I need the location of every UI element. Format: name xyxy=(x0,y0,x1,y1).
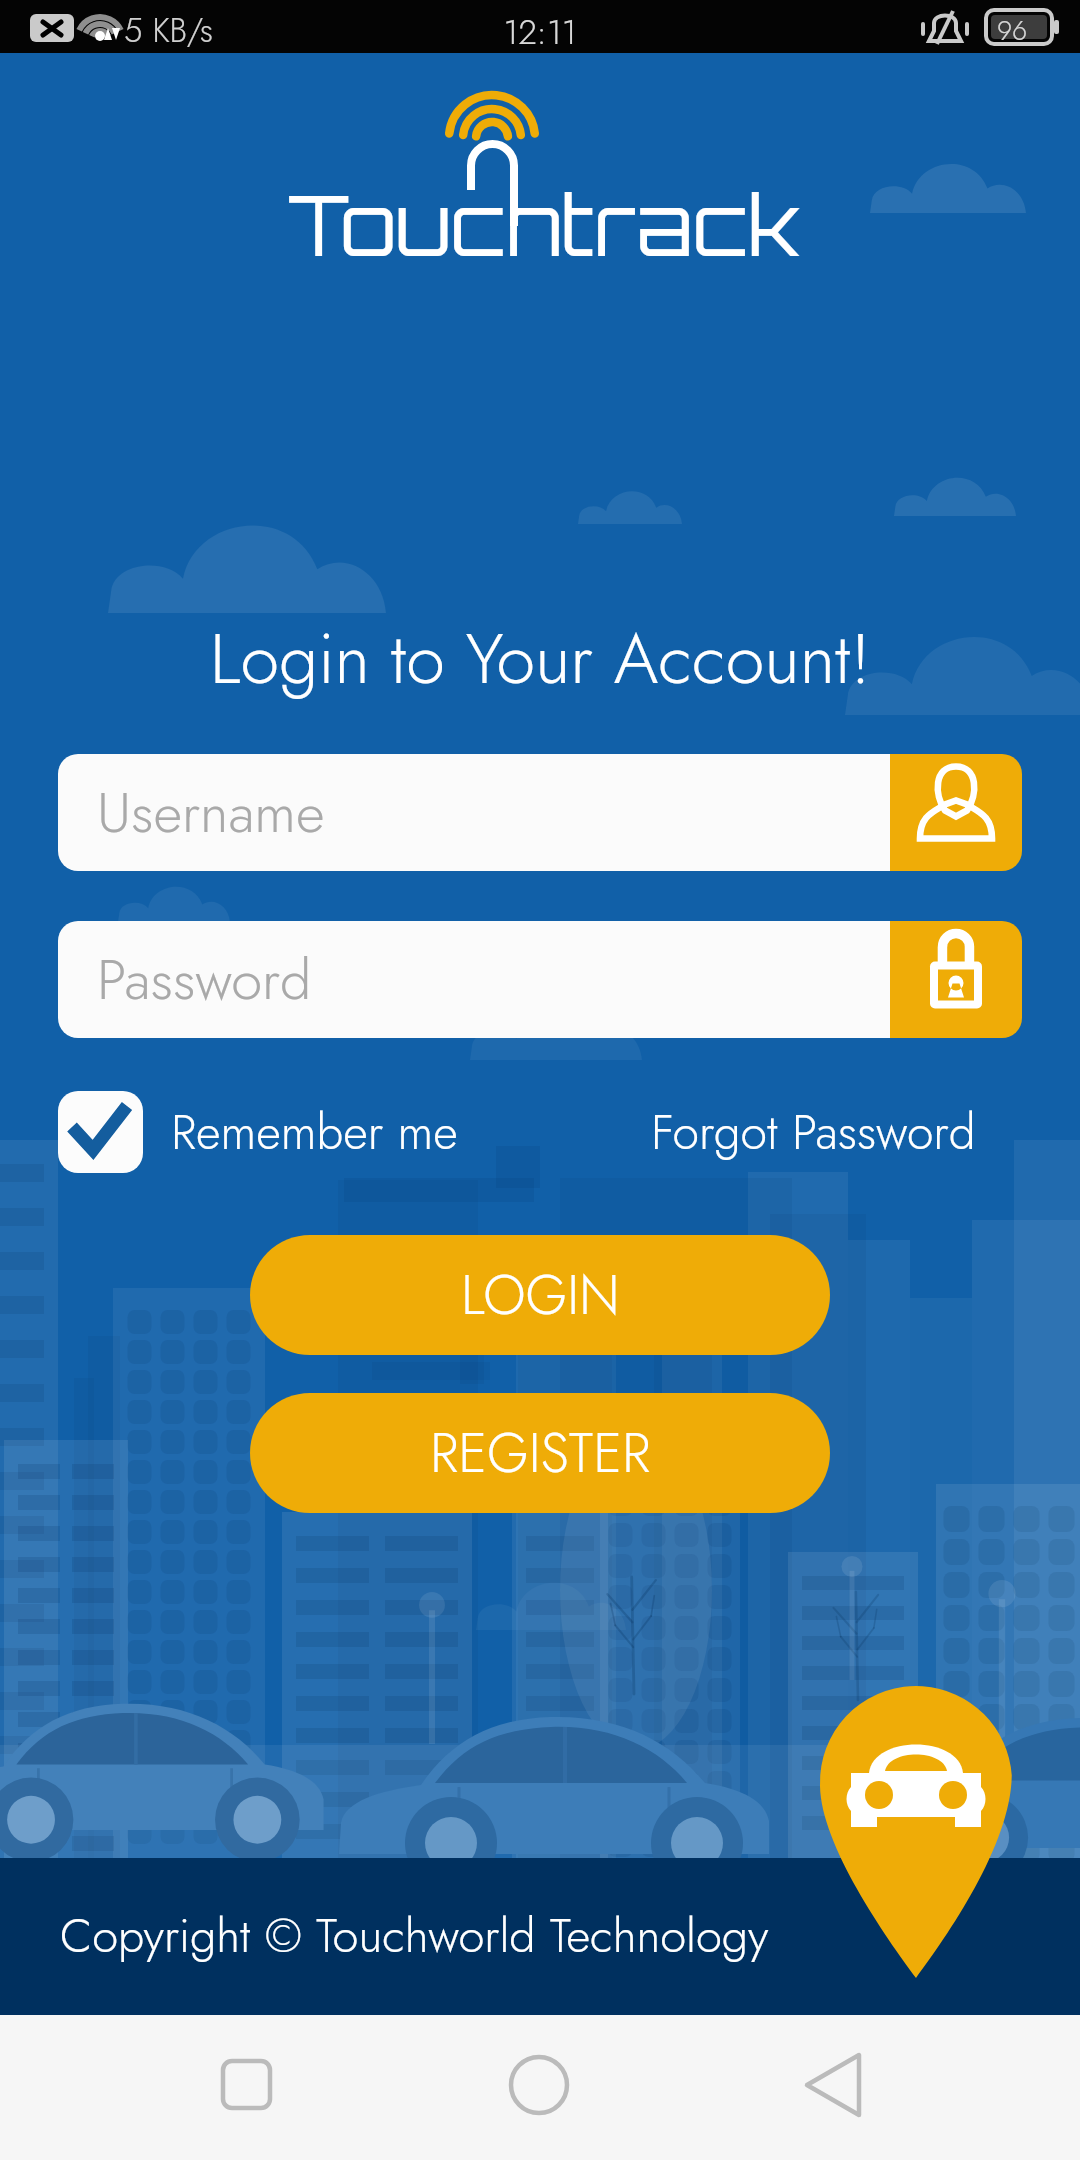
button[interactable]: Forgot Password xyxy=(651,1098,976,1167)
button[interactable]: Remember me xyxy=(58,1091,458,1173)
button[interactable]: Track vehicle xyxy=(819,1686,1013,1980)
staticText: Forgot Password xyxy=(651,1098,976,1167)
button[interactable]: Username xyxy=(58,754,1022,871)
staticText: Copyright © Touchworld Technology xyxy=(60,1902,769,1970)
staticText: Touchtrack xyxy=(4,173,1080,276)
staticText: LOGIN xyxy=(461,1256,620,1334)
button[interactable]: REGISTER xyxy=(250,1393,830,1513)
staticText: Username xyxy=(97,772,325,853)
button[interactable]: LOGIN xyxy=(250,1235,830,1355)
staticText: 96 xyxy=(997,11,1028,50)
button[interactable]: Password xyxy=(58,921,1022,1038)
staticText: 12:11 xyxy=(0,8,1080,57)
staticText: Login to Your Account! xyxy=(0,608,1080,709)
staticText: Password xyxy=(97,939,312,1020)
staticText: 5 KB/s xyxy=(124,7,214,55)
staticText: Remember me xyxy=(171,1098,458,1167)
staticText: REGISTER xyxy=(430,1414,651,1492)
